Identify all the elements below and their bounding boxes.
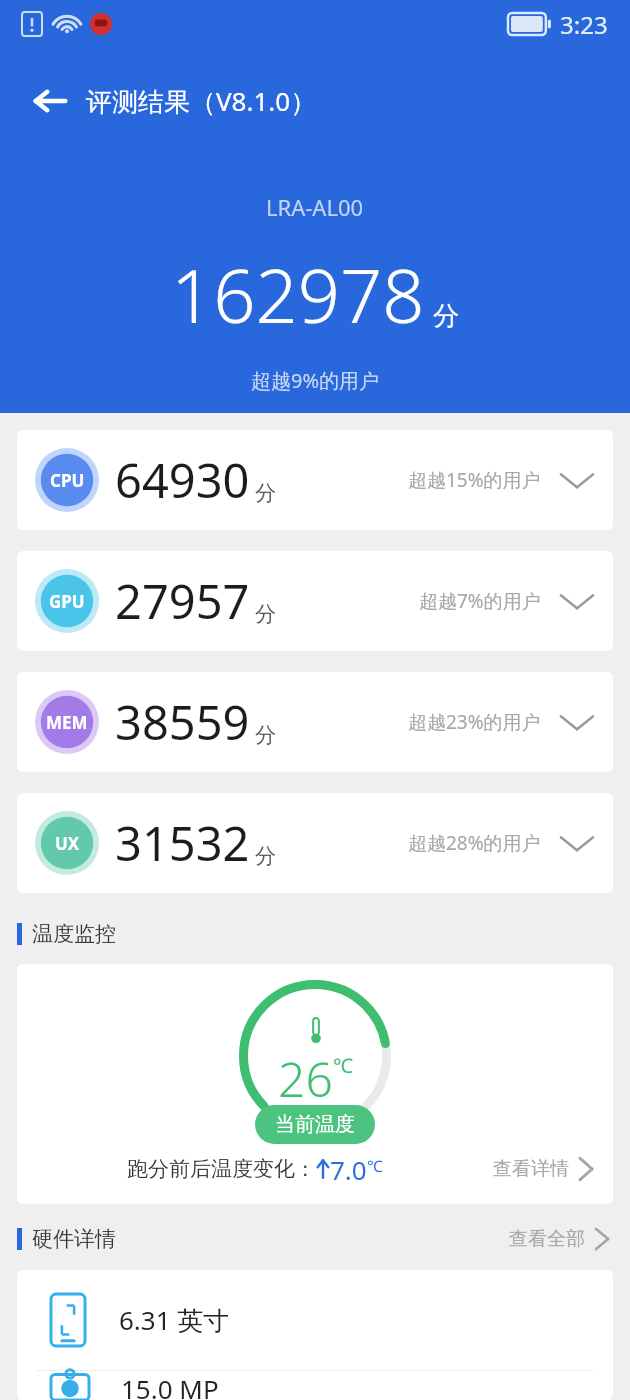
staticText: 当前温度 (275, 1112, 355, 1137)
staticText: 7.0 (330, 1152, 367, 1187)
staticText: 查看全部 (509, 1227, 585, 1251)
staticText: GPU (49, 590, 85, 613)
staticText: LRA-AL00 (266, 192, 364, 222)
button[interactable]: GPU (17, 551, 613, 651)
staticText: 超越23%的用户 (408, 709, 541, 735)
staticText: 分 (255, 480, 276, 506)
button[interactable]: 15.0 MP (17, 1371, 613, 1400)
button[interactable]: Back (22, 73, 78, 129)
staticText: 超越9%的用户 (251, 367, 380, 394)
staticText: 评测结果（V8.1.0） (86, 83, 317, 119)
staticText: CPU (50, 469, 85, 492)
staticText: 162978 (171, 244, 425, 345)
staticText: ℃ (333, 1052, 353, 1079)
staticText: 分 (255, 722, 276, 748)
button[interactable]: MEM (17, 672, 613, 772)
staticText: ℃ (367, 1155, 383, 1177)
staticText: MEM (46, 711, 88, 734)
staticText: 38559 (115, 690, 250, 754)
staticText: 31532 (115, 811, 250, 875)
staticText: 分 (255, 843, 276, 869)
staticText: 温度监控 (32, 921, 116, 947)
staticText: 分 (433, 300, 459, 333)
button[interactable]: 6.31 英寸 (17, 1270, 613, 1370)
staticText: 跑分前后温度变化： (127, 1156, 316, 1182)
staticText: 3:23 (560, 8, 608, 41)
button[interactable]: UX (17, 793, 613, 893)
staticText: UX (55, 832, 80, 855)
staticText: 26 (278, 1046, 333, 1111)
staticText: 超越7%的用户 (419, 588, 541, 614)
button[interactable]: 查看全部 (509, 1224, 613, 1254)
staticText: 超越15%的用户 (408, 467, 541, 493)
staticText: 查看详情 (493, 1157, 569, 1181)
staticText: 超越28%的用户 (408, 830, 541, 856)
staticText: 64930 (115, 448, 250, 512)
staticText: 分 (255, 601, 276, 627)
button[interactable]: 当前温度 (275, 1112, 355, 1137)
staticText: 硬件详情 (32, 1226, 116, 1252)
staticText: 27957 (115, 569, 250, 633)
button[interactable]: CPU (17, 430, 613, 530)
staticText: 15.0 MP (121, 1371, 219, 1400)
staticText: 6.31 英寸 (119, 1302, 230, 1338)
button[interactable]: 查看详情 (493, 1152, 597, 1186)
